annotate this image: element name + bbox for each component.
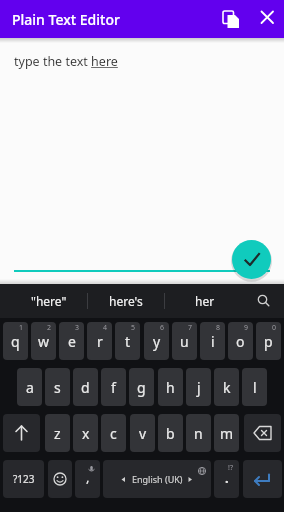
staticText: 0: [272, 323, 277, 333]
staticText: 2: [47, 323, 52, 333]
button[interactable]: z: [45, 414, 70, 452]
button[interactable]: ,: [75, 460, 100, 498]
staticText: type the text here: [14, 53, 118, 70]
button[interactable]: ?123: [3, 460, 44, 498]
staticText: a: [26, 378, 34, 397]
button[interactable]: [216, 4, 246, 34]
staticText: "here": [31, 293, 67, 309]
staticText: q: [11, 332, 20, 351]
staticText: s: [54, 378, 61, 397]
button[interactable]: n: [186, 414, 211, 452]
button[interactable]: v: [130, 414, 155, 452]
staticText: her: [195, 293, 215, 309]
staticText: n: [194, 424, 203, 443]
staticText: v: [139, 424, 147, 443]
staticText: j: [197, 378, 201, 397]
button[interactable]: [253, 5, 281, 33]
staticText: .: [225, 469, 229, 487]
staticText: 5: [131, 323, 136, 333]
button[interactable]: b: [158, 414, 183, 452]
button[interactable]: f: [101, 368, 126, 406]
staticText: d: [81, 378, 90, 397]
button[interactable]: m: [214, 414, 239, 452]
button[interactable]: g: [129, 368, 154, 406]
staticText: here's: [109, 293, 143, 309]
button[interactable]: y: [144, 322, 169, 360]
staticText: z: [54, 424, 61, 443]
staticText: ?123: [13, 472, 35, 486]
staticText: 4: [103, 323, 108, 333]
button[interactable]: [232, 240, 271, 279]
staticText: 8: [216, 323, 221, 333]
staticText: c: [110, 424, 117, 443]
staticText: m: [220, 424, 234, 443]
staticText: 6: [160, 323, 165, 333]
button[interactable]: p: [256, 322, 281, 360]
staticText: r: [97, 332, 103, 351]
button[interactable]: q: [3, 322, 28, 360]
staticText: y: [153, 332, 161, 351]
staticText: t: [125, 332, 131, 351]
staticText: p: [264, 332, 273, 351]
button[interactable]: j: [186, 368, 211, 406]
button[interactable]: x: [73, 414, 98, 452]
staticText: e: [68, 332, 76, 351]
staticText: ,: [86, 468, 90, 486]
button[interactable]: s: [45, 368, 70, 406]
staticText: g: [137, 378, 146, 397]
button[interactable]: h: [158, 368, 183, 406]
staticText: x: [82, 424, 90, 443]
button[interactable]: [48, 460, 72, 498]
button[interactable]: [244, 414, 281, 452]
staticText: b: [166, 424, 175, 443]
button[interactable]: k: [214, 368, 239, 406]
button[interactable]: r: [87, 322, 112, 360]
button[interactable]: a: [17, 368, 42, 406]
button[interactable]: here's: [88, 284, 164, 318]
button[interactable]: [250, 287, 278, 315]
button[interactable]: l: [242, 368, 267, 406]
staticText: i: [211, 332, 215, 351]
button[interactable]: w: [31, 322, 56, 360]
staticText: o: [236, 332, 245, 351]
staticText: 3: [75, 323, 80, 333]
staticText: 1: [19, 323, 24, 333]
button[interactable]: English (UK): [103, 460, 211, 498]
button[interactable]: her: [166, 284, 244, 318]
staticText: l: [253, 378, 257, 397]
button[interactable]: c: [101, 414, 126, 452]
button[interactable]: .: [214, 460, 239, 498]
button[interactable]: o: [228, 322, 253, 360]
button[interactable]: t: [115, 322, 140, 360]
button[interactable]: e: [59, 322, 84, 360]
staticText: k: [223, 378, 231, 397]
button[interactable]: [243, 460, 282, 498]
staticText: w: [38, 332, 50, 351]
button[interactable]: d: [73, 368, 98, 406]
staticText: h: [166, 378, 175, 397]
staticText: u: [180, 332, 189, 351]
button[interactable]: u: [172, 322, 197, 360]
staticText: f: [111, 378, 116, 397]
button[interactable]: i: [200, 322, 225, 360]
button[interactable]: "here": [10, 284, 88, 318]
staticText: !?: [228, 463, 233, 473]
staticText: 7: [188, 323, 193, 333]
staticText: Plain Text Editor: [12, 10, 120, 29]
button[interactable]: [3, 414, 40, 452]
staticText: English (UK): [132, 473, 183, 485]
staticText: 9: [244, 323, 249, 333]
